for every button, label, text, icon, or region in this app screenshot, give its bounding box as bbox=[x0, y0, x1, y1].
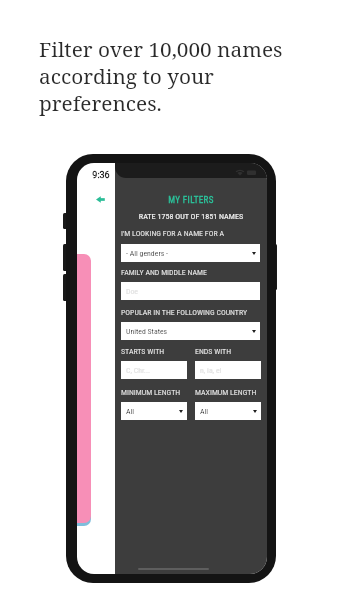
staticText: United States bbox=[126, 327, 168, 336]
staticText: RATE 1758 OUT OF 1851 NAMES bbox=[115, 211, 267, 220]
staticText: n, ia, el bbox=[200, 366, 222, 375]
staticText: FAMILY AND MIDDLE NAME bbox=[121, 268, 207, 277]
staticText: MINIMUM LENGTH bbox=[121, 388, 181, 397]
staticText: Doe bbox=[126, 287, 139, 296]
button[interactable]: - All genders - bbox=[121, 244, 260, 262]
staticText: C, Chr... bbox=[126, 366, 151, 375]
staticText: MY FILTERS bbox=[115, 195, 267, 206]
staticText: 9:36 bbox=[86, 170, 116, 181]
staticText: - All genders - bbox=[126, 249, 169, 258]
staticText: MAXIMUM LENGTH bbox=[195, 388, 257, 397]
button[interactable]: Back bbox=[92, 192, 108, 207]
button[interactable]: All bbox=[195, 402, 261, 420]
staticText: ENDS WITH bbox=[195, 347, 232, 356]
staticText: POPULAR IN THE FOLLOWING COUNTRY bbox=[121, 308, 248, 317]
staticText: STARTS WITH bbox=[121, 347, 165, 356]
staticText: I'M LOOKING FOR A NAME FOR A bbox=[121, 229, 224, 238]
staticText: Filter over 10,000 names according to yo… bbox=[39, 35, 289, 117]
button[interactable]: C, Chr... bbox=[121, 361, 187, 379]
button[interactable]: n, ia, el bbox=[195, 361, 261, 379]
staticText: All bbox=[126, 407, 135, 416]
button[interactable]: All bbox=[121, 402, 187, 420]
staticText: All bbox=[200, 407, 209, 416]
button[interactable]: United States bbox=[121, 322, 260, 340]
